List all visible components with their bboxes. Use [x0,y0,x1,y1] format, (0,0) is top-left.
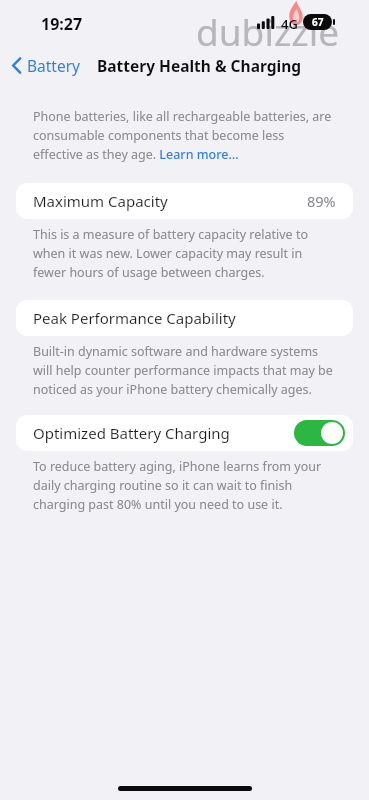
button[interactable]: Optimized Battery Charging toggle, on [294,420,345,446]
staticText: To reduce battery aging, iPhone learns f… [33,458,333,513]
staticText: 89% [307,191,336,211]
staticText: Maximum Capacity [33,191,168,211]
staticText: 4G [281,15,298,33]
staticText: Phone batteries, like all rechargeable b… [33,108,333,163]
staticText: Battery Health & Charging [97,55,301,76]
staticText: Optimized Battery Charging [33,423,230,443]
button[interactable]: Maximum Capacity [16,183,353,219]
staticText: Battery [27,55,81,76]
button[interactable]: Peak Performance Capability [16,300,353,336]
staticText: Built-in dynamic software and hardware s… [33,343,340,398]
staticText: dubizzle [196,6,340,56]
staticText: 19:27 [41,13,83,35]
staticText: 67 [312,15,324,29]
button[interactable]: Battery [8,52,85,79]
button[interactable]: Optimized Battery Charging [16,415,353,451]
staticText: Peak Performance Capability [33,308,236,328]
staticText: This is a measure of battery capacity re… [33,226,333,281]
